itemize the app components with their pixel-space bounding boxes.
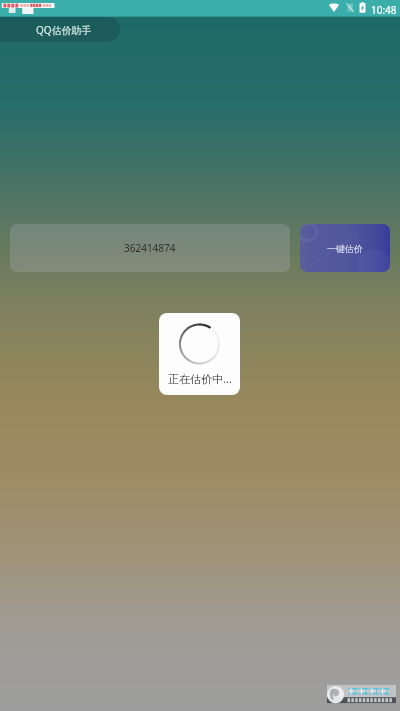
- other: No SIM card: [346, 3, 354, 12]
- button[interactable]: 362414874: [10, 224, 290, 272]
- staticText: 362414874: [124, 241, 176, 255]
- staticText: 一键估价: [327, 243, 363, 254]
- button[interactable]: QQ估价助手: [0, 17, 120, 42]
- button[interactable]: 一键估价: [300, 224, 390, 272]
- other: Wi-Fi: [329, 3, 339, 12]
- staticText: QQ估价助手: [36, 23, 92, 37]
- staticText: 正在估价中...: [168, 371, 232, 386]
- staticText: 10:48: [371, 3, 397, 17]
- other: Battery charging: [359, 2, 366, 13]
